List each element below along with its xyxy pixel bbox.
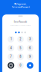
staticText: 1 (10, 37, 11, 41)
staticText: 4 (10, 46, 12, 50)
button[interactable]: Unlock with fingerprint (8, 62, 14, 69)
button[interactable]: 1 (8, 36, 14, 43)
button[interactable]: 7 (8, 53, 14, 60)
staticText: 6 (29, 46, 31, 50)
button[interactable]: Confirm passcode (27, 62, 33, 69)
staticText: Pattern and Password (11, 6, 29, 8)
staticText: 8 (19, 55, 21, 58)
staticText: 7 (10, 55, 12, 58)
staticText: Enter your passcode to continue (10, 25, 31, 26)
button[interactable]: 9 (27, 53, 33, 60)
staticText: 9 (29, 55, 31, 58)
staticText: 2 (19, 37, 21, 41)
staticText: Enter Passcode (14, 21, 27, 23)
staticText: 5 (19, 46, 21, 50)
button[interactable]: 2 (17, 36, 24, 43)
button[interactable]: 4 (8, 45, 14, 51)
button[interactable]: 3 (27, 36, 33, 43)
staticText: 0 (19, 64, 21, 67)
button[interactable]: 0 (17, 62, 24, 69)
button[interactable]: 6 (27, 45, 33, 51)
button[interactable]: 5 (17, 45, 24, 51)
staticText: 3 (29, 37, 31, 41)
button[interactable]: 8 (17, 53, 24, 60)
staticText: PIN, Fingerprint, (14, 3, 27, 5)
